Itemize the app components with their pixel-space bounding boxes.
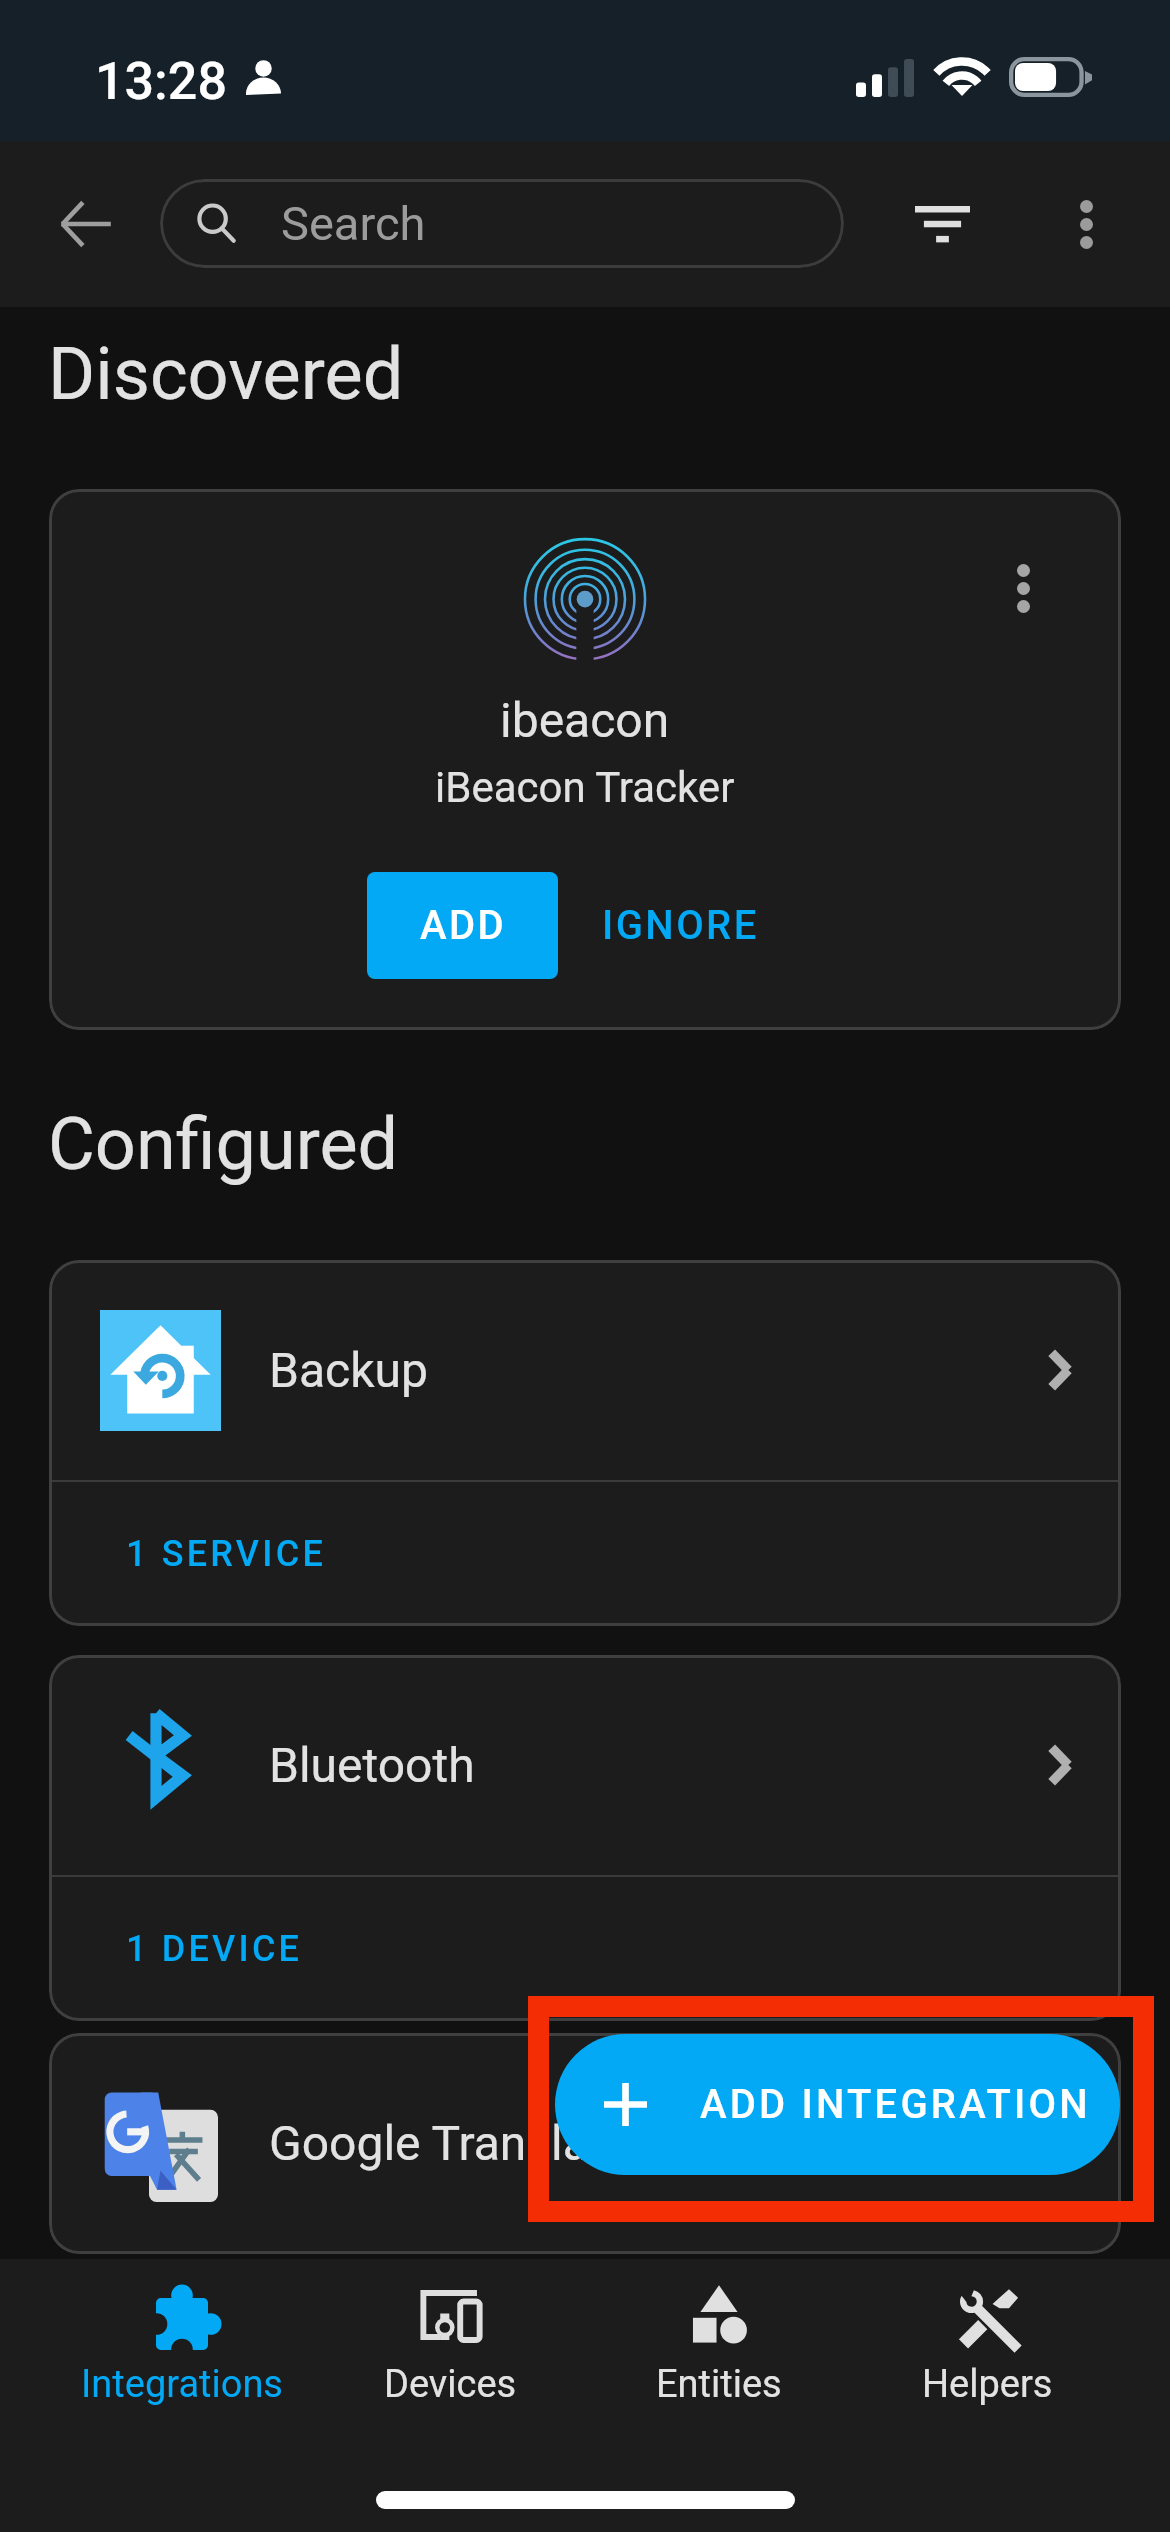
staticText: ADD INTEGRATION xyxy=(700,2081,1091,2128)
button[interactable]: More options xyxy=(1026,164,1146,284)
staticText: Devices xyxy=(384,2362,517,2407)
staticText: Discovered xyxy=(48,332,404,416)
button[interactable]: IGNORE xyxy=(568,872,793,979)
staticText: 1 DEVICE xyxy=(126,1928,303,1970)
button[interactable]: Bluetooth xyxy=(49,1655,1121,1875)
staticText: IGNORE xyxy=(602,902,759,949)
staticText: 1 SERVICE xyxy=(126,1533,326,1575)
button[interactable]: 1 SERVICE xyxy=(49,1482,1121,1626)
staticText: Entities xyxy=(656,2362,782,2407)
button[interactable]: Filter xyxy=(882,164,1002,284)
staticText: ADD xyxy=(420,902,506,949)
button[interactable]: Integrations xyxy=(48,2259,316,2449)
button[interactable]: Back xyxy=(26,164,146,284)
staticText: Configured xyxy=(48,1102,399,1186)
button[interactable]: ADD xyxy=(367,872,558,979)
staticText: Google Translate xyxy=(269,2115,631,2171)
staticText: 13:28 xyxy=(95,51,227,112)
staticText: Integrations xyxy=(81,2362,283,2407)
button[interactable]: More options xyxy=(968,533,1078,643)
button[interactable]: Entities xyxy=(584,2259,853,2449)
staticText: Backup xyxy=(269,1342,428,1398)
staticText: ibeacon xyxy=(500,692,670,748)
button[interactable]: Backup xyxy=(49,1260,1121,1480)
staticText: Helpers xyxy=(922,2362,1053,2407)
button[interactable]: Google Translate xyxy=(49,2033,1121,2253)
staticText: Search xyxy=(281,196,426,251)
staticText: iBeacon Tracker xyxy=(435,763,735,812)
button[interactable]: Helpers xyxy=(853,2259,1122,2449)
button[interactable]: Search xyxy=(160,179,844,268)
staticText: Bluetooth xyxy=(269,1737,475,1793)
button[interactable]: 1 DEVICE xyxy=(49,1877,1121,2021)
button[interactable]: ADD INTEGRATION xyxy=(555,2034,1120,2175)
button[interactable]: Devices xyxy=(316,2259,584,2449)
